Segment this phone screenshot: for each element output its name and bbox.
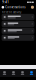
button[interactable] xyxy=(2,14,34,20)
button[interactable] xyxy=(2,28,34,34)
button[interactable] xyxy=(2,35,34,41)
button[interactable]: Tab xyxy=(0,69,9,77)
button[interactable]: Tab xyxy=(18,69,27,77)
button[interactable]: Conversations xyxy=(2,5,25,10)
staticText: Recent activity xyxy=(2,10,21,14)
staticText: Conversations xyxy=(5,5,25,9)
button[interactable]: Tab xyxy=(9,69,18,77)
staticText: 9:41 xyxy=(2,0,9,4)
button[interactable] xyxy=(2,21,34,27)
button[interactable]: Tab xyxy=(27,69,36,77)
button[interactable]: Profile xyxy=(30,5,34,9)
